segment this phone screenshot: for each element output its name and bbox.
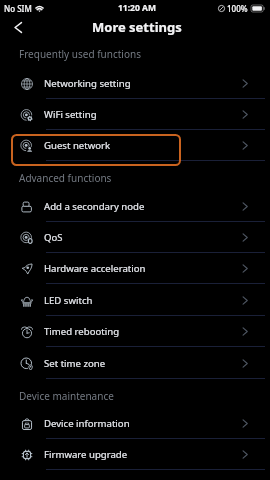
staticText: QoS [44,231,63,244]
staticText: 11:20 AM [118,2,156,14]
button[interactable]: Firmware upgrade [0,439,270,470]
staticText: LED switch [44,294,93,307]
button[interactable]: QoS [0,222,270,253]
button[interactable]: Add a secondary node [0,191,270,222]
staticText: Frequently used functions [19,47,141,61]
staticText: Firmware upgrade [44,448,128,461]
staticText: 100% [227,3,248,14]
button[interactable] [11,134,181,166]
staticText: Guest network [44,139,111,152]
staticText: Networking setting [44,77,131,90]
staticText: Advanced functions [19,171,112,185]
staticText: Device information [44,417,130,430]
staticText: Timed rebooting [44,325,120,338]
button[interactable]: Hardware acceleration [0,253,270,284]
button[interactable]: Device information [0,408,270,439]
button[interactable]: Set time zone [0,348,270,379]
button[interactable]: Guest network [0,130,270,161]
button[interactable]: WiFi setting [0,99,270,130]
button[interactable]: Timed rebooting [0,316,270,347]
button[interactable]: Back [5,14,31,40]
staticText: WiFi setting [44,108,97,121]
staticText: Add a secondary node [44,200,145,213]
staticText: Set time zone [44,357,106,370]
staticText: No SIM [4,3,32,14]
button[interactable]: LED switch [0,285,270,316]
staticText: Hardware acceleration [44,262,146,275]
button[interactable]: Networking setting [0,68,270,99]
staticText: More settings [92,18,182,36]
staticText: Device maintenance [19,389,114,403]
